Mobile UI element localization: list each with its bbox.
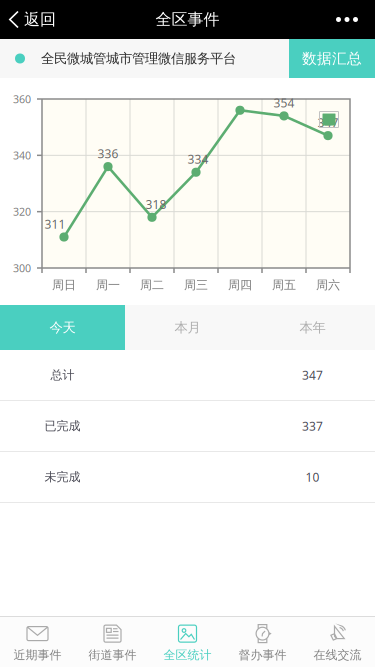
button[interactable]: 本年 [250,305,375,350]
staticText: 返回 [24,10,56,29]
button[interactable]: 街道事件 [75,617,150,667]
staticText: 近期事件 [13,648,61,662]
staticText: 311 [44,216,65,232]
button[interactable]: 在线交流 [300,617,375,667]
button[interactable]: 返回 [0,0,68,39]
staticText: 本月 [174,319,200,336]
staticText: 周日 [52,278,76,292]
staticText: 本年 [299,319,325,336]
staticText: 318 [145,196,166,212]
staticText: 已完成 [44,419,80,433]
staticText: 督办事件 [238,648,286,662]
staticText: 周五 [272,278,296,292]
staticText: 10 [305,469,319,485]
staticText: 全区统计 [163,648,211,662]
staticText: 334 [187,151,208,167]
staticText: 360 [13,92,31,106]
staticText: 全民微城管城市管理微信服务平台 [41,50,236,67]
staticText: 300 [13,261,31,275]
button[interactable]: 数据汇总 [289,39,375,78]
staticText: 未完成 [44,470,80,484]
staticText: 今天 [49,319,75,336]
staticText: 周二 [140,278,164,292]
staticText: 全区事件 [155,10,219,29]
staticText: 340 [13,148,31,162]
staticText: 320 [13,205,31,219]
staticText: 数据汇总 [302,49,362,67]
staticText: 周三 [184,278,208,292]
staticText: 周六 [316,278,340,292]
staticText: 347 [317,115,338,130]
staticText: 周一 [96,278,120,292]
staticText: 337 [302,418,323,434]
staticText: 336 [97,146,118,161]
button[interactable]: 近期事件 [0,617,75,667]
staticText: 在线交流 [313,648,361,662]
button[interactable]: 督办事件 [225,617,300,667]
staticText: 街道事件 [88,648,136,662]
button[interactable]: 全区统计 [150,617,225,667]
staticText: 347 [302,367,323,383]
button[interactable]: 今天 [0,305,125,350]
button[interactable]: 本月 [125,305,250,350]
staticText: 总计 [50,368,74,382]
button[interactable]: More options [320,0,375,39]
staticText: 周四 [228,278,252,292]
staticText: 354 [273,95,294,111]
